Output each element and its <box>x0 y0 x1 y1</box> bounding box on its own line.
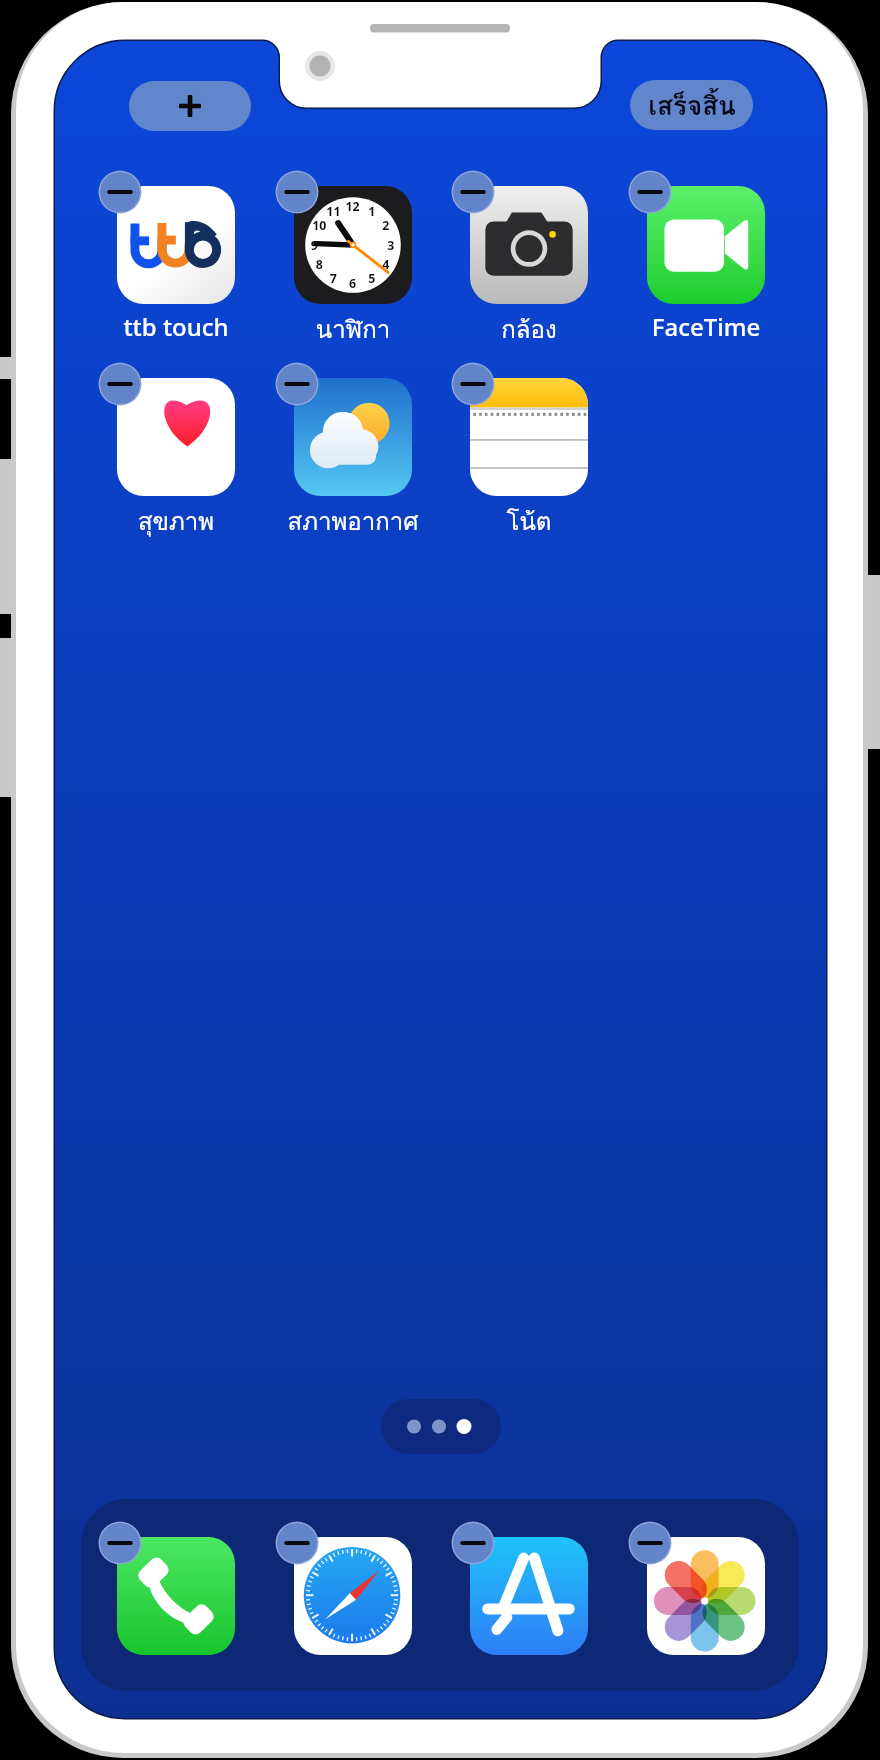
button[interactable]: Photos <box>647 1537 765 1655</box>
staticText: FaceTime <box>627 310 785 354</box>
button[interactable]: Safari <box>294 1537 412 1655</box>
staticText: ttb touch <box>97 310 255 354</box>
button[interactable]: FaceTime <box>627 186 785 366</box>
button[interactable]: กล้อง <box>450 186 608 366</box>
button[interactable]: Remove app <box>628 1521 672 1565</box>
button[interactable]: Remove app <box>451 362 495 406</box>
button[interactable]: Remove app <box>98 1521 142 1565</box>
button[interactable]: Remove app <box>451 170 495 214</box>
button[interactable]: สุขภาพ <box>97 378 255 558</box>
button[interactable]: Add widget <box>129 81 251 131</box>
button[interactable]: ttb touch <box>97 186 255 366</box>
button[interactable]: Remove app <box>98 362 142 406</box>
button[interactable]: เสร็จสิ้น <box>630 80 753 130</box>
staticText: นาฬิกา <box>274 310 432 354</box>
button[interactable]: Remove app <box>451 1521 495 1565</box>
staticText: สุขภาพ <box>97 502 255 546</box>
button[interactable]: Remove app <box>98 170 142 214</box>
button[interactable]: นาฬิกา <box>274 186 432 366</box>
staticText: สภาพอากาศ <box>274 502 432 546</box>
button[interactable]: App Store <box>470 1537 588 1655</box>
staticText: กล้อง <box>450 310 608 354</box>
button[interactable]: สภาพอากาศ <box>274 378 432 558</box>
button[interactable]: Remove app <box>275 1521 319 1565</box>
button[interactable]: Phone <box>117 1537 235 1655</box>
button[interactable]: Remove app <box>275 170 319 214</box>
button[interactable]: Page indicator <box>381 1399 501 1454</box>
button[interactable]: Remove app <box>275 362 319 406</box>
staticText: เสร็จสิ้น <box>648 85 736 126</box>
button[interactable]: Remove app <box>628 170 672 214</box>
staticText: โน้ต <box>450 502 608 546</box>
button[interactable]: โน้ต <box>450 378 608 558</box>
